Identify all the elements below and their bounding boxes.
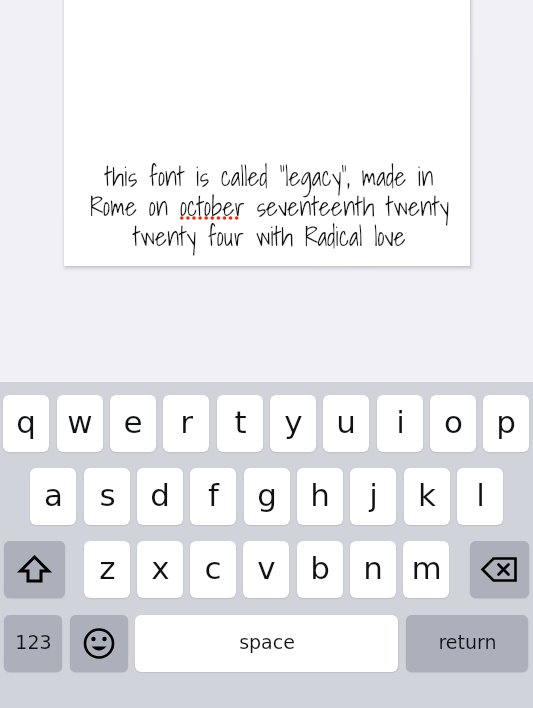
staticText: i <box>396 404 405 440</box>
button[interactable]: t <box>217 395 263 452</box>
staticText: f <box>208 477 219 513</box>
staticText: j <box>369 477 378 513</box>
staticText: n <box>363 550 383 586</box>
button[interactable]: j <box>350 468 396 525</box>
staticText: o <box>444 404 463 440</box>
staticText: q <box>16 404 36 440</box>
staticText: d <box>150 477 170 513</box>
staticText: w <box>67 404 93 440</box>
staticText: return <box>438 631 497 653</box>
button[interactable]: n <box>350 541 396 598</box>
button[interactable]: w <box>57 395 103 452</box>
button[interactable]: q <box>3 395 49 452</box>
button[interactable]: a <box>30 468 76 525</box>
staticText: g <box>257 477 277 513</box>
button[interactable]: b <box>297 541 343 598</box>
button[interactable]: f <box>190 468 236 525</box>
staticText: p <box>496 404 516 440</box>
staticText: this font is called “legacy”, made in Ro… <box>90 155 449 257</box>
staticText: space <box>239 631 295 653</box>
staticText: r <box>180 404 193 440</box>
button[interactable]: m <box>403 541 449 598</box>
button[interactable]: g <box>244 468 290 525</box>
staticText: c <box>204 550 222 586</box>
button[interactable]: Emoji <box>70 615 128 672</box>
staticText: v <box>257 550 276 586</box>
button[interactable]: e <box>110 395 156 452</box>
staticText: e <box>123 404 143 440</box>
button[interactable]: r <box>163 395 209 452</box>
button[interactable]: v <box>243 541 289 598</box>
button[interactable]: i <box>377 395 423 452</box>
staticText: 123 <box>15 631 52 653</box>
staticText: m <box>411 550 442 586</box>
button[interactable]: Shift <box>4 541 65 598</box>
button[interactable]: s <box>84 468 130 525</box>
button[interactable]: u <box>323 395 369 452</box>
staticText: t <box>234 404 247 440</box>
button[interactable]: return <box>406 615 528 672</box>
button[interactable]: z <box>84 541 130 598</box>
button[interactable]: o <box>430 395 476 452</box>
staticText: y <box>284 404 303 440</box>
staticText: b <box>310 550 330 586</box>
staticText: a <box>44 477 63 513</box>
button[interactable]: h <box>297 468 343 525</box>
staticText: x <box>151 550 170 586</box>
staticText: z <box>99 550 116 586</box>
button[interactable]: space <box>135 615 398 672</box>
staticText: l <box>476 477 485 513</box>
button[interactable]: 123 <box>4 615 62 672</box>
staticText: u <box>336 404 356 440</box>
staticText: s <box>99 477 116 513</box>
button[interactable]: c <box>190 541 236 598</box>
button[interactable]: y <box>270 395 316 452</box>
button[interactable]: p <box>483 395 529 452</box>
staticText: h <box>310 477 330 513</box>
button[interactable]: d <box>137 468 183 525</box>
button[interactable]: Backspace <box>470 541 529 598</box>
button[interactable]: k <box>404 468 450 525</box>
button[interactable]: l <box>457 468 503 525</box>
button[interactable]: x <box>137 541 183 598</box>
staticText: k <box>418 477 436 513</box>
